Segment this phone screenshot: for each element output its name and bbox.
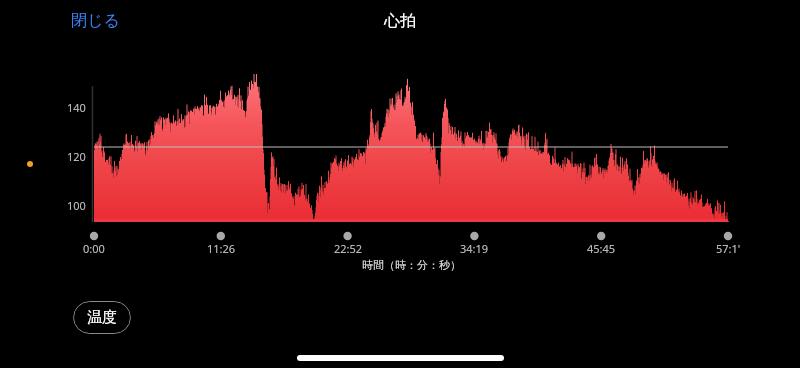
staticText: 温度 [87,308,117,327]
button[interactable]: Activity indicator [27,161,33,167]
button[interactable]: 閉じる [70,10,121,32]
staticText: 57:1' [716,241,741,255]
staticText: 120 [67,149,86,163]
staticText: 34:19 [460,241,489,255]
staticText: 閉じる [71,11,120,31]
staticText: 100 [67,198,86,212]
staticText: 0:00 [83,241,105,255]
staticText: 11:26 [207,241,236,255]
other: Home indicator [297,355,504,361]
staticText: 45:45 [587,241,616,255]
button[interactable]: 温度 [73,301,131,334]
staticText: 22:52 [334,241,363,255]
staticText: 140 [67,100,86,114]
staticText: 時間（時：分：秒） [362,258,461,272]
staticText: 心拍 [384,11,416,31]
